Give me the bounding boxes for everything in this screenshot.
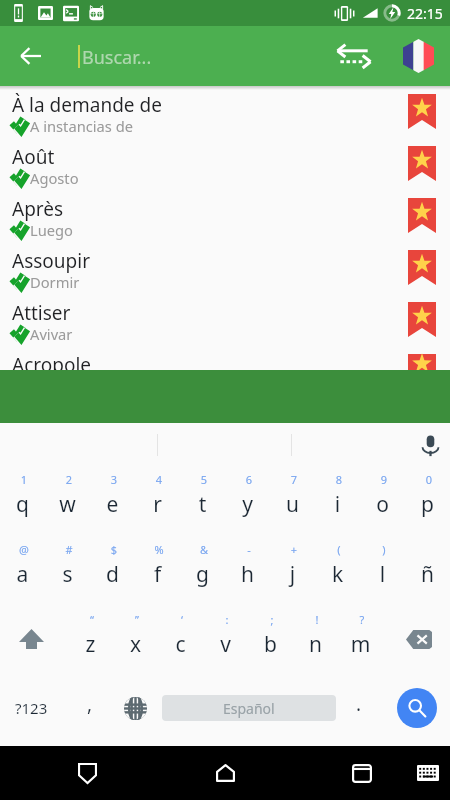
button[interactable]: Recent apps bbox=[338, 749, 386, 797]
button[interactable]: 2 bbox=[45, 463, 90, 533]
button[interactable]: ‘ bbox=[158, 603, 203, 673]
button[interactable]: Home bbox=[201, 749, 249, 797]
button[interactable]: 8 bbox=[315, 463, 360, 533]
staticText: - bbox=[239, 542, 259, 557]
button[interactable]: @ bbox=[0, 533, 45, 603]
button[interactable]: , bbox=[62, 673, 117, 743]
button[interactable]: Backspace bbox=[382, 603, 450, 673]
button[interactable]: 4 bbox=[135, 463, 180, 533]
staticText: 22:15 bbox=[407, 4, 443, 23]
staticText: Español bbox=[223, 699, 275, 718]
button[interactable]: Assoupir bbox=[0, 242, 450, 294]
staticText: , bbox=[87, 691, 93, 717]
staticText: ” bbox=[127, 612, 147, 627]
button[interactable]: Après bbox=[0, 190, 450, 242]
button[interactable]: 3 bbox=[90, 463, 135, 533]
staticText: 2 bbox=[59, 472, 79, 487]
staticText: ?123 bbox=[15, 698, 48, 718]
staticText: q bbox=[0, 490, 45, 519]
button[interactable]: Favourite bbox=[408, 354, 436, 378]
staticText: A instancias de bbox=[30, 116, 133, 136]
staticText: p bbox=[405, 490, 450, 519]
button[interactable]: Voice input bbox=[410, 426, 450, 466]
staticText: Après bbox=[12, 196, 64, 222]
button[interactable]: 5 bbox=[180, 463, 225, 533]
staticText: f bbox=[135, 560, 180, 589]
staticText: Acropole bbox=[12, 352, 92, 376]
staticText: “ bbox=[82, 612, 102, 627]
staticText: ( bbox=[329, 542, 349, 557]
button[interactable]: Source language French bbox=[392, 26, 444, 86]
staticText: 8 bbox=[329, 472, 349, 487]
button[interactable]: Back bbox=[63, 749, 111, 797]
button[interactable]: Favourite bbox=[408, 198, 436, 233]
button[interactable]: Acropole bbox=[0, 346, 450, 370]
button[interactable]: # bbox=[45, 533, 90, 603]
button[interactable]: & bbox=[180, 533, 225, 603]
staticText: 1 bbox=[14, 472, 34, 487]
staticText: . bbox=[356, 691, 362, 717]
staticText: : bbox=[217, 612, 237, 627]
button[interactable]: ) bbox=[360, 533, 405, 603]
button[interactable]: Attiser bbox=[0, 294, 450, 346]
button[interactable]: $ bbox=[90, 533, 135, 603]
staticText: 5 bbox=[194, 472, 214, 487]
staticText: o bbox=[360, 490, 405, 519]
button[interactable]: ; bbox=[248, 603, 293, 673]
staticText: 6 bbox=[239, 472, 259, 487]
button[interactable]: : bbox=[203, 603, 248, 673]
button[interactable]: Switch keyboard bbox=[404, 749, 450, 797]
staticText: j bbox=[270, 560, 315, 589]
button[interactable]: Favourite bbox=[408, 146, 436, 181]
staticText: m bbox=[338, 630, 383, 659]
button[interactable]: À la demande de bbox=[0, 86, 450, 138]
button[interactable]: Favourite bbox=[408, 302, 436, 337]
button[interactable]: % bbox=[135, 533, 180, 603]
staticText: 3 bbox=[104, 472, 124, 487]
button[interactable]: Favourite bbox=[408, 250, 436, 285]
button[interactable]: Change keyboard language bbox=[113, 673, 158, 743]
staticText: À la demande de bbox=[12, 92, 162, 118]
button[interactable]: Shift bbox=[0, 603, 67, 673]
staticText: ? bbox=[352, 612, 372, 627]
staticText: h bbox=[225, 560, 270, 589]
button[interactable]: Favourite bbox=[408, 94, 436, 129]
button[interactable]: Search bbox=[397, 688, 437, 728]
button[interactable]: ! bbox=[293, 603, 338, 673]
staticText: Dormir bbox=[30, 272, 80, 292]
button[interactable]: - bbox=[225, 533, 270, 603]
staticText: r bbox=[135, 490, 180, 519]
button[interactable]: “ bbox=[68, 603, 113, 673]
staticText: y bbox=[225, 490, 270, 519]
staticText: ‘ bbox=[172, 612, 192, 627]
staticText: s bbox=[45, 560, 90, 589]
staticText: v bbox=[203, 630, 248, 659]
button[interactable]: ” bbox=[113, 603, 158, 673]
button[interactable]: . bbox=[336, 673, 381, 743]
button[interactable]: 9 bbox=[360, 463, 405, 533]
button[interactable]: Español bbox=[162, 695, 336, 721]
button[interactable]: 7 bbox=[270, 463, 315, 533]
staticText: 7 bbox=[284, 472, 304, 487]
staticText: x bbox=[113, 630, 158, 659]
button[interactable]: 0 bbox=[405, 463, 450, 533]
staticText: u bbox=[270, 490, 315, 519]
button[interactable]: Swap languages bbox=[325, 26, 383, 86]
button[interactable]: ( bbox=[315, 533, 360, 603]
button[interactable]: ? bbox=[338, 603, 383, 673]
staticText: l bbox=[360, 560, 405, 589]
button[interactable]: ñ bbox=[405, 533, 450, 603]
button[interactable]: 1 bbox=[0, 463, 45, 533]
staticText: 0 bbox=[419, 472, 439, 487]
staticText: Avivar bbox=[30, 324, 73, 344]
button[interactable]: Back bbox=[7, 26, 54, 86]
button[interactable]: + bbox=[270, 533, 315, 603]
button[interactable]: ?123 bbox=[0, 673, 62, 743]
staticText: 4 bbox=[149, 472, 169, 487]
staticText: b bbox=[248, 630, 293, 659]
staticText: Assoupir bbox=[12, 248, 91, 274]
staticText: @ bbox=[14, 542, 34, 557]
button[interactable]: Août bbox=[0, 138, 450, 190]
button[interactable]: 6 bbox=[225, 463, 270, 533]
